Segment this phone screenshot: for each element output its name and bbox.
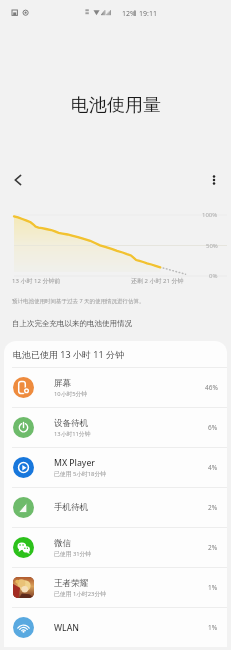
staticText: 电池已使用 13 小时 11 分钟: [13, 348, 124, 360]
staticText: 4%: [208, 463, 218, 472]
staticText: 13 小时 12 分钟前: [12, 277, 61, 285]
staticText: 预计电池使用时间基于过去 7 天的使用情况进行估算。: [12, 297, 145, 305]
button[interactable]: 设备待机: [4, 408, 227, 447]
staticText: 设备待机: [54, 418, 89, 429]
button[interactable]: 屏幕: [4, 368, 227, 407]
button[interactable]: MX Player: [4, 448, 227, 487]
staticText: 1%: [208, 623, 218, 632]
staticText: 46%: [205, 383, 218, 392]
staticText: 手机待机: [54, 502, 89, 513]
staticText: 12%: [122, 9, 136, 19]
staticText: 1%: [208, 583, 218, 592]
staticText: 自上次完全充电以来的电池使用情况: [12, 319, 132, 328]
staticText: 13小时11分钟: [54, 430, 91, 438]
staticText: 微信: [54, 538, 72, 549]
staticText: 10小时5分钟: [54, 390, 88, 398]
staticText: 100%: [202, 211, 218, 219]
button[interactable]: WLAN: [4, 608, 227, 647]
staticText: 电池使用量: [71, 94, 161, 114]
staticText: WLAN: [54, 622, 79, 634]
staticText: 已使用 5小时18分钟: [54, 470, 107, 478]
staticText: 19:11: [139, 9, 157, 19]
staticText: MX Player: [54, 457, 95, 469]
button[interactable]: 微信: [4, 528, 227, 567]
button[interactable]: 王者荣耀: [4, 568, 227, 607]
staticText: 已使用 1小时23分钟: [54, 590, 107, 598]
staticText: 还剩 2 小时 21 分钟: [131, 277, 184, 285]
button[interactable]: More options: [202, 168, 225, 191]
staticText: 2%: [208, 543, 218, 552]
staticText: 已使用 31分钟: [54, 550, 92, 558]
staticText: 50%: [206, 242, 218, 250]
staticText: 王者荣耀: [54, 578, 89, 589]
staticText: 0%: [209, 272, 218, 280]
staticText: 6%: [208, 423, 218, 432]
button[interactable]: 手机待机: [4, 488, 227, 527]
staticText: 屏幕: [54, 378, 72, 389]
staticText: 2%: [208, 503, 218, 512]
button[interactable]: Back: [6, 168, 29, 191]
